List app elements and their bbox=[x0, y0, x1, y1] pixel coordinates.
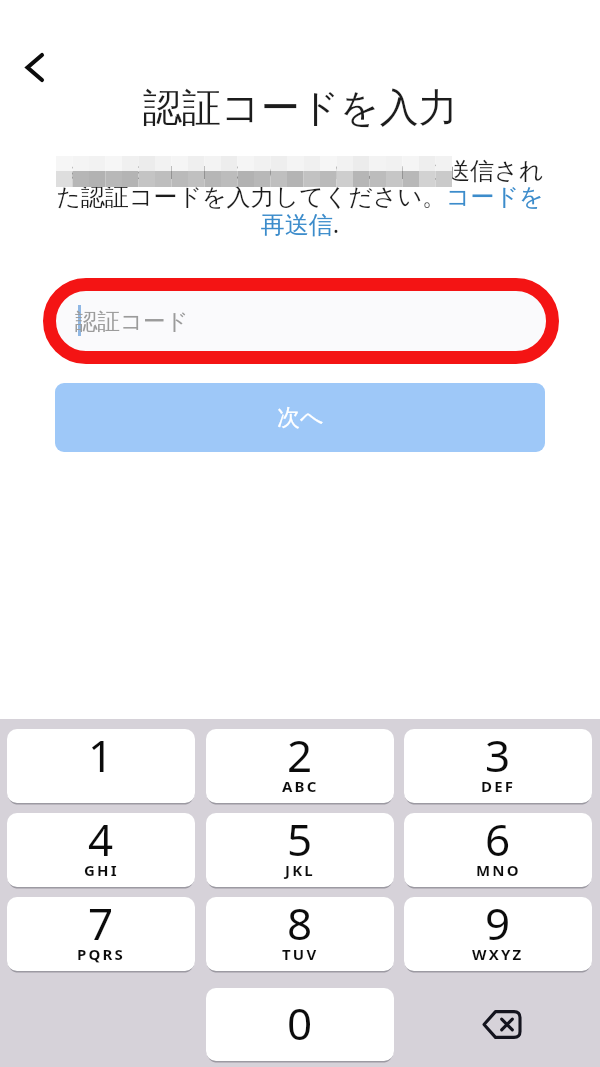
staticText: 3 bbox=[485, 729, 511, 785]
button[interactable]: 4 bbox=[7, 813, 195, 887]
staticText: WXYZ bbox=[472, 944, 524, 964]
staticText: 8 bbox=[287, 897, 313, 953]
staticText: 7 bbox=[88, 897, 114, 953]
staticText: 認証コード bbox=[75, 307, 189, 335]
button[interactable]: 1 bbox=[7, 729, 195, 803]
staticText: 9 bbox=[485, 897, 511, 953]
staticText: 6 bbox=[485, 813, 511, 869]
staticText: 2 bbox=[287, 729, 313, 785]
staticText: TUV bbox=[282, 944, 319, 964]
button[interactable]: 9 bbox=[404, 897, 592, 971]
staticText: PQRS bbox=[77, 944, 126, 964]
button[interactable]: 0 bbox=[206, 988, 394, 1061]
staticText: MNO bbox=[476, 860, 521, 880]
button[interactable]: 8 bbox=[206, 897, 394, 971]
button[interactable]: 次へ bbox=[55, 383, 545, 452]
staticText: DEF bbox=[481, 776, 516, 796]
staticText: 1 bbox=[88, 729, 114, 785]
staticText: GHI bbox=[84, 860, 119, 880]
button[interactable]: 6 bbox=[404, 813, 592, 887]
staticText: 4 bbox=[88, 813, 114, 869]
staticText: 0 bbox=[287, 993, 313, 1053]
button[interactable]: Backspace bbox=[404, 988, 592, 1061]
button[interactable]: 3 bbox=[404, 729, 592, 803]
staticText: JKL bbox=[285, 860, 315, 880]
button[interactable]: 2 bbox=[206, 729, 394, 803]
button[interactable]: Back bbox=[9, 42, 59, 92]
staticText: yamadatarou.abcde@gmail.comに送信され た認証コードを… bbox=[10, 153, 590, 240]
staticText: ABC bbox=[282, 776, 319, 796]
staticText: 認証コードを入力 bbox=[143, 83, 458, 132]
button[interactable]: 認証コード bbox=[55, 288, 545, 354]
staticText: 5 bbox=[287, 813, 313, 869]
button[interactable]: 7 bbox=[7, 897, 195, 971]
staticText: 次へ bbox=[277, 403, 324, 432]
button[interactable]: 5 bbox=[206, 813, 394, 887]
